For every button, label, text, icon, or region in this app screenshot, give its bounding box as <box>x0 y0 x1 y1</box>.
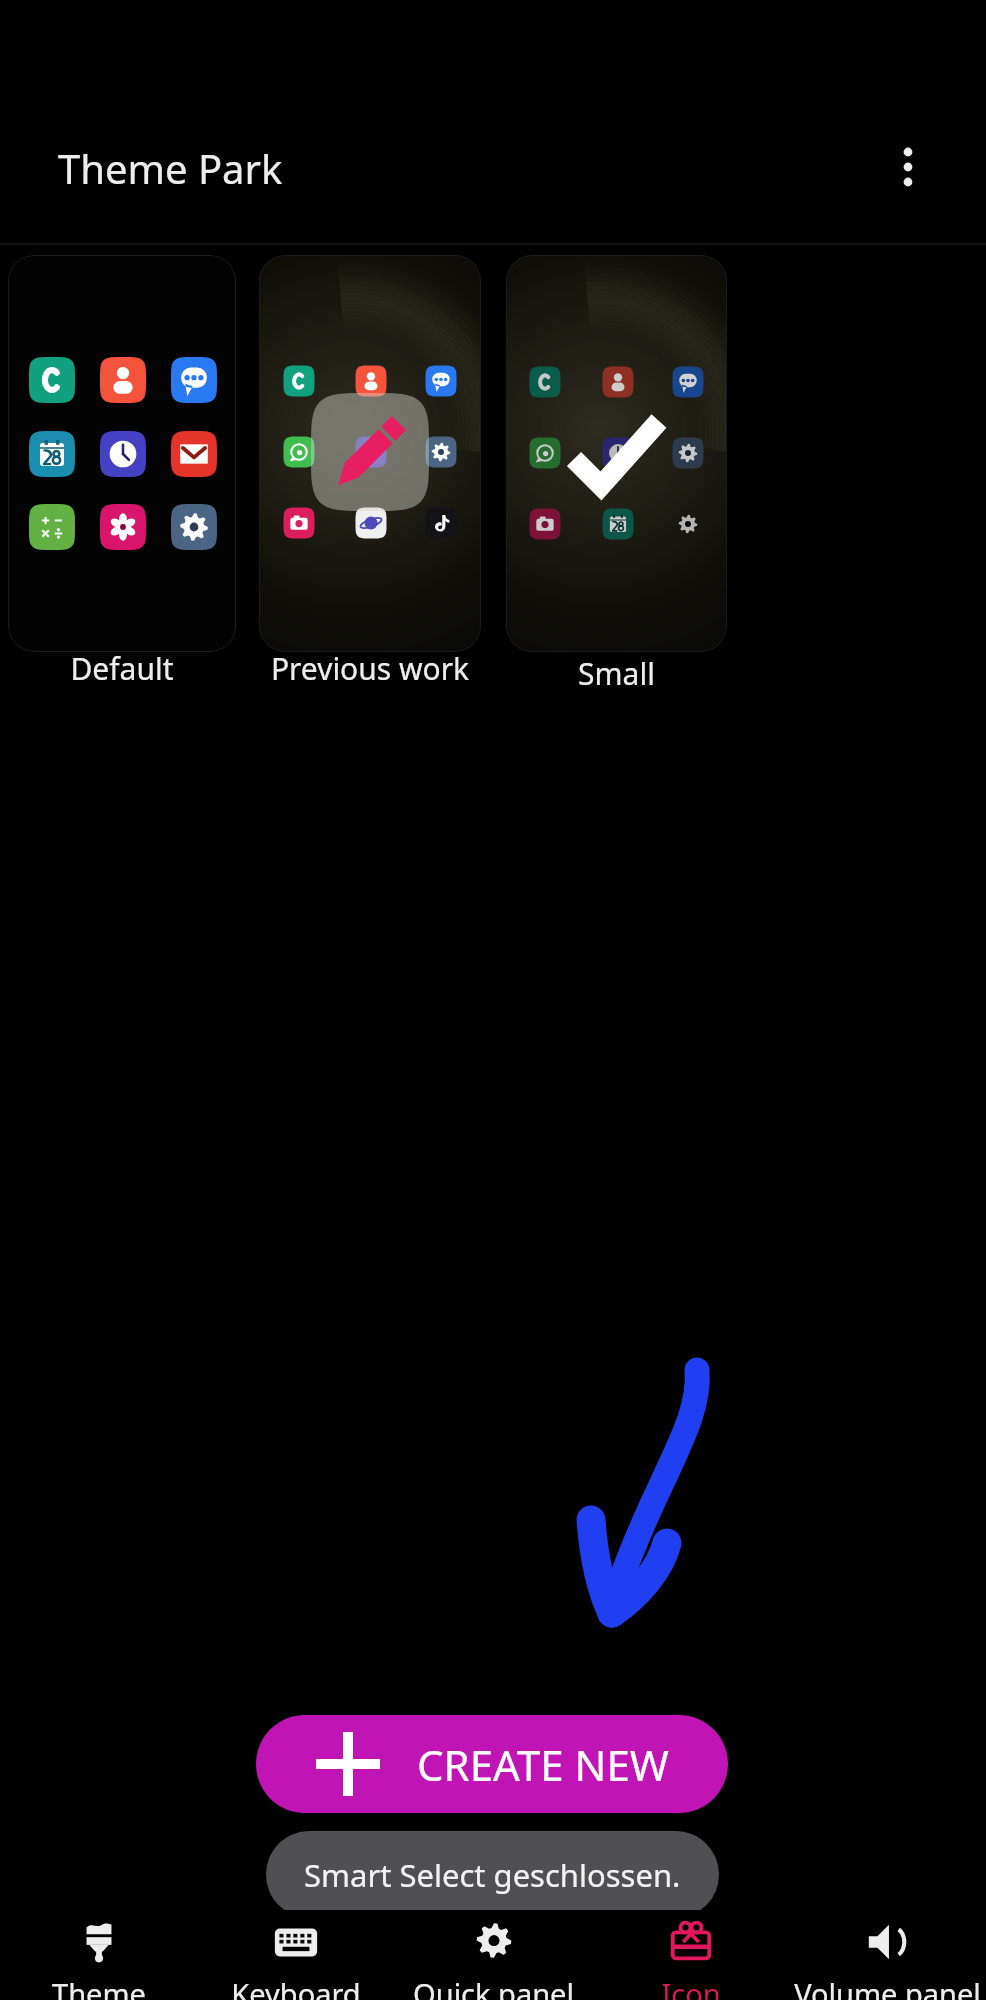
staticText: CREATE NEW <box>417 1736 669 1793</box>
button[interactable]: CREATE NEW <box>256 1715 728 1813</box>
button[interactable]: Quick panel <box>395 1910 592 2000</box>
button[interactable]: More options <box>872 130 944 202</box>
staticText: Keyboard <box>231 1974 361 2000</box>
staticText: Smart Select geschlossen. <box>304 1854 681 1896</box>
staticText: Small <box>506 653 727 694</box>
staticText: Theme Park <box>58 141 283 195</box>
button[interactable]: Volume panel <box>789 1910 986 2000</box>
button[interactable]: Default <box>8 255 236 652</box>
button[interactable]: Keyboard <box>197 1910 394 2000</box>
staticText: Quick panel <box>413 1974 574 2000</box>
button[interactable]: Theme <box>0 1910 197 2000</box>
button[interactable]: Previous work <box>259 255 481 652</box>
staticText: Volume panel <box>794 1974 981 2000</box>
staticText: Icon <box>661 1974 721 2000</box>
button[interactable]: Icon <box>592 1910 789 2000</box>
staticText: Theme <box>52 1974 146 2000</box>
staticText: Default <box>8 648 236 689</box>
staticText: Previous work <box>259 648 481 689</box>
button[interactable]: Small <box>506 255 727 652</box>
